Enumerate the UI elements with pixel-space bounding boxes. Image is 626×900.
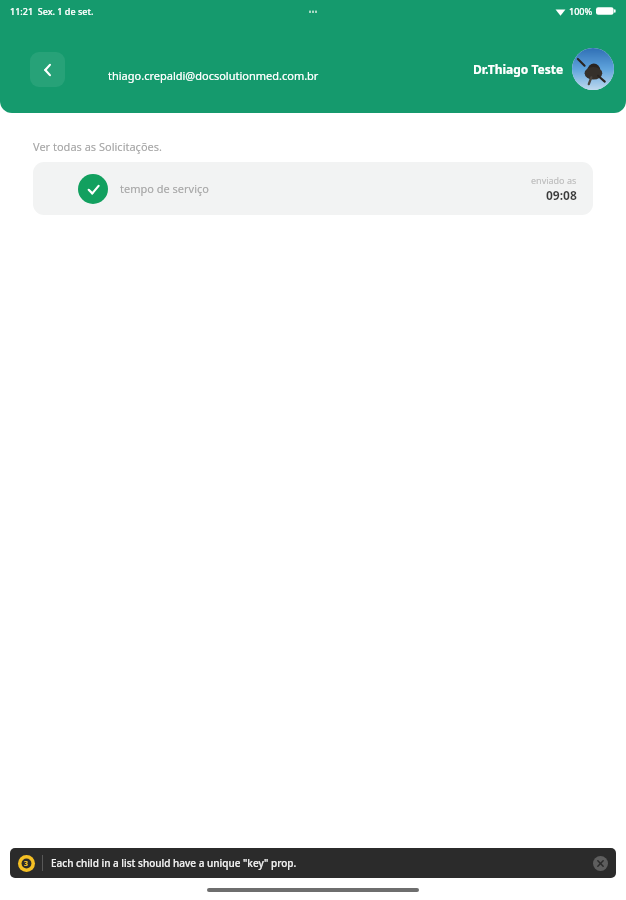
staticText: tempo de serviço xyxy=(120,181,209,196)
button[interactable]: Dismiss xyxy=(593,856,608,871)
staticText: Dr.Thiago Teste xyxy=(473,61,564,77)
button[interactable]: 3 xyxy=(10,848,616,878)
staticText: 100% xyxy=(569,5,593,17)
button[interactable]: Dr.Thiago Teste xyxy=(473,48,614,90)
staticText: 3 xyxy=(24,859,29,869)
staticText: Ver todas as Solicitações. xyxy=(33,139,162,154)
staticText: 11:21 Sex. 1 de set. xyxy=(10,5,94,17)
staticText: enviado as xyxy=(531,174,577,186)
button[interactable]: Back xyxy=(30,52,65,87)
staticText: 09:08 xyxy=(546,187,577,203)
staticText: thiago.crepaldi@docsolutionmed.com.br xyxy=(108,68,319,83)
staticText: Each child in a list should have a uniqu… xyxy=(51,856,297,870)
staticText: ••• xyxy=(308,6,318,17)
button[interactable]: tempo de serviço xyxy=(33,162,593,215)
